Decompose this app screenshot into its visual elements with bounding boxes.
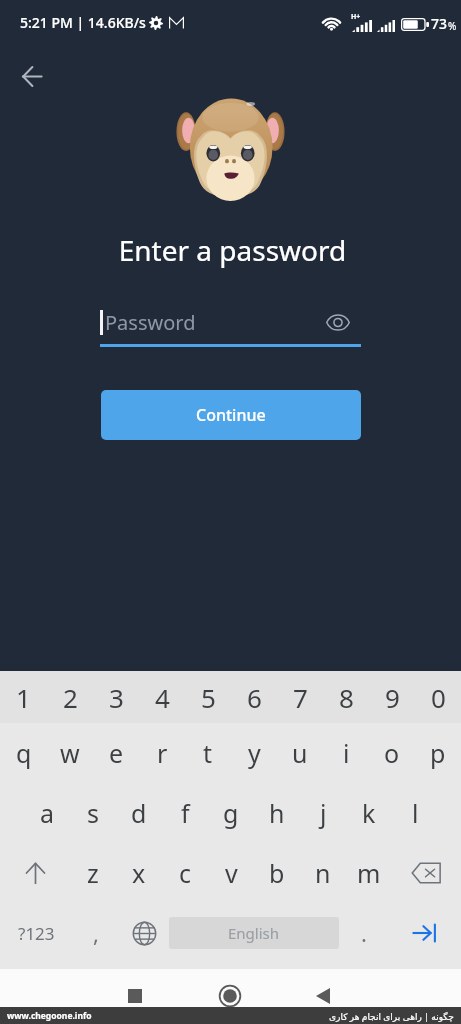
staticText: f (181, 796, 190, 830)
staticText: 4 (155, 680, 170, 715)
button[interactable]: Recent apps (113, 969, 157, 1007)
staticText: k (362, 796, 376, 830)
button[interactable]: Next (388, 903, 461, 963)
staticText: a (40, 796, 55, 830)
button[interactable]: Back (301, 969, 345, 1007)
button[interactable]: v (208, 843, 254, 903)
staticText: 0 (431, 680, 446, 715)
button[interactable]: ?123 (0, 903, 72, 963)
button[interactable]: u (277, 723, 323, 783)
button[interactable]: q (0, 723, 47, 783)
button[interactable]: e (93, 723, 139, 783)
staticText: 8 (339, 680, 354, 715)
staticText: u (292, 736, 308, 770)
button[interactable]: . (339, 903, 388, 963)
staticText: c (179, 856, 192, 890)
button[interactable]: w (47, 723, 93, 783)
button[interactable]: h (254, 783, 300, 843)
button[interactable]: English (169, 917, 339, 949)
button[interactable]: l (392, 783, 438, 843)
staticText: Continue (196, 404, 266, 426)
button[interactable]: i (323, 723, 369, 783)
staticText: 7 (293, 680, 308, 715)
button[interactable]: 1 (0, 671, 47, 723)
button[interactable]: Show password (321, 305, 355, 339)
staticText: , (93, 918, 99, 948)
staticText: چگونه | راهی برای انجام هر کاری (329, 1010, 454, 1022)
button[interactable]: Change language (120, 903, 169, 963)
button[interactable]: r (139, 723, 185, 783)
button[interactable]: n (300, 843, 346, 903)
button[interactable]: s (70, 783, 116, 843)
button[interactable]: Backspace (392, 843, 461, 903)
button[interactable]: p (415, 723, 461, 783)
button[interactable]: Back (8, 54, 56, 98)
button[interactable]: x (116, 843, 162, 903)
button[interactable]: 6 (231, 671, 277, 723)
button[interactable]: 9 (369, 671, 415, 723)
button[interactable]: 5 (185, 671, 231, 723)
staticText: e (109, 736, 124, 770)
button[interactable]: z (70, 843, 116, 903)
staticText: t (203, 736, 213, 770)
button[interactable]: o (369, 723, 415, 783)
staticText: www.chegoone.info (7, 1010, 92, 1022)
staticText: English (228, 923, 280, 943)
staticText: q (16, 736, 32, 770)
button[interactable]: , (72, 903, 120, 963)
staticText: x (132, 856, 146, 890)
staticText: b (269, 856, 285, 890)
button[interactable]: g (208, 783, 254, 843)
staticText: h (269, 796, 285, 830)
staticText: i (343, 736, 350, 770)
staticText: Enter a password (2, 231, 461, 269)
staticText: s (87, 796, 99, 830)
staticText: l (412, 796, 419, 830)
staticText: d (131, 796, 147, 830)
button[interactable]: y (231, 723, 277, 783)
button[interactable]: 3 (93, 671, 139, 723)
staticText: 6 (247, 680, 262, 715)
staticText: y (248, 736, 261, 770)
staticText: o (384, 736, 400, 770)
button[interactable]: 2 (47, 671, 93, 723)
staticText: v (225, 856, 238, 890)
staticText: Password (105, 309, 196, 336)
staticText: 9 (385, 680, 400, 715)
button[interactable]: b (254, 843, 300, 903)
button[interactable]: Continue (101, 390, 361, 440)
staticText: g (223, 796, 239, 830)
button[interactable]: f (162, 783, 208, 843)
button[interactable]: c (162, 843, 208, 903)
staticText: n (315, 856, 331, 890)
staticText: w (60, 736, 80, 770)
staticText: p (430, 736, 446, 770)
staticText: j (320, 796, 327, 830)
button[interactable]: a (24, 783, 70, 843)
staticText: 73 (431, 14, 448, 33)
staticText: % (448, 19, 457, 33)
button[interactable]: k (346, 783, 392, 843)
staticText: 5:21 PM | 14.6KB/s (20, 13, 146, 32)
staticText: 2 (63, 680, 78, 715)
button[interactable]: 8 (323, 671, 369, 723)
button[interactable]: 4 (139, 671, 185, 723)
button[interactable]: m (346, 843, 392, 903)
button[interactable]: d (116, 783, 162, 843)
staticText: m (357, 856, 381, 890)
button[interactable]: Home (208, 969, 252, 1007)
staticText: 5 (201, 680, 216, 715)
button[interactable]: 7 (277, 671, 323, 723)
button[interactable]: t (185, 723, 231, 783)
staticText: ?123 (18, 922, 55, 945)
staticText: r (157, 736, 168, 770)
button[interactable]: 0 (415, 671, 461, 723)
staticText: H+ (351, 12, 361, 22)
staticText: 1 (16, 680, 31, 715)
staticText: 3 (109, 680, 124, 715)
button[interactable]: j (300, 783, 346, 843)
button[interactable]: Shift (0, 843, 70, 903)
staticText: . (361, 918, 367, 948)
staticText: z (87, 856, 99, 890)
